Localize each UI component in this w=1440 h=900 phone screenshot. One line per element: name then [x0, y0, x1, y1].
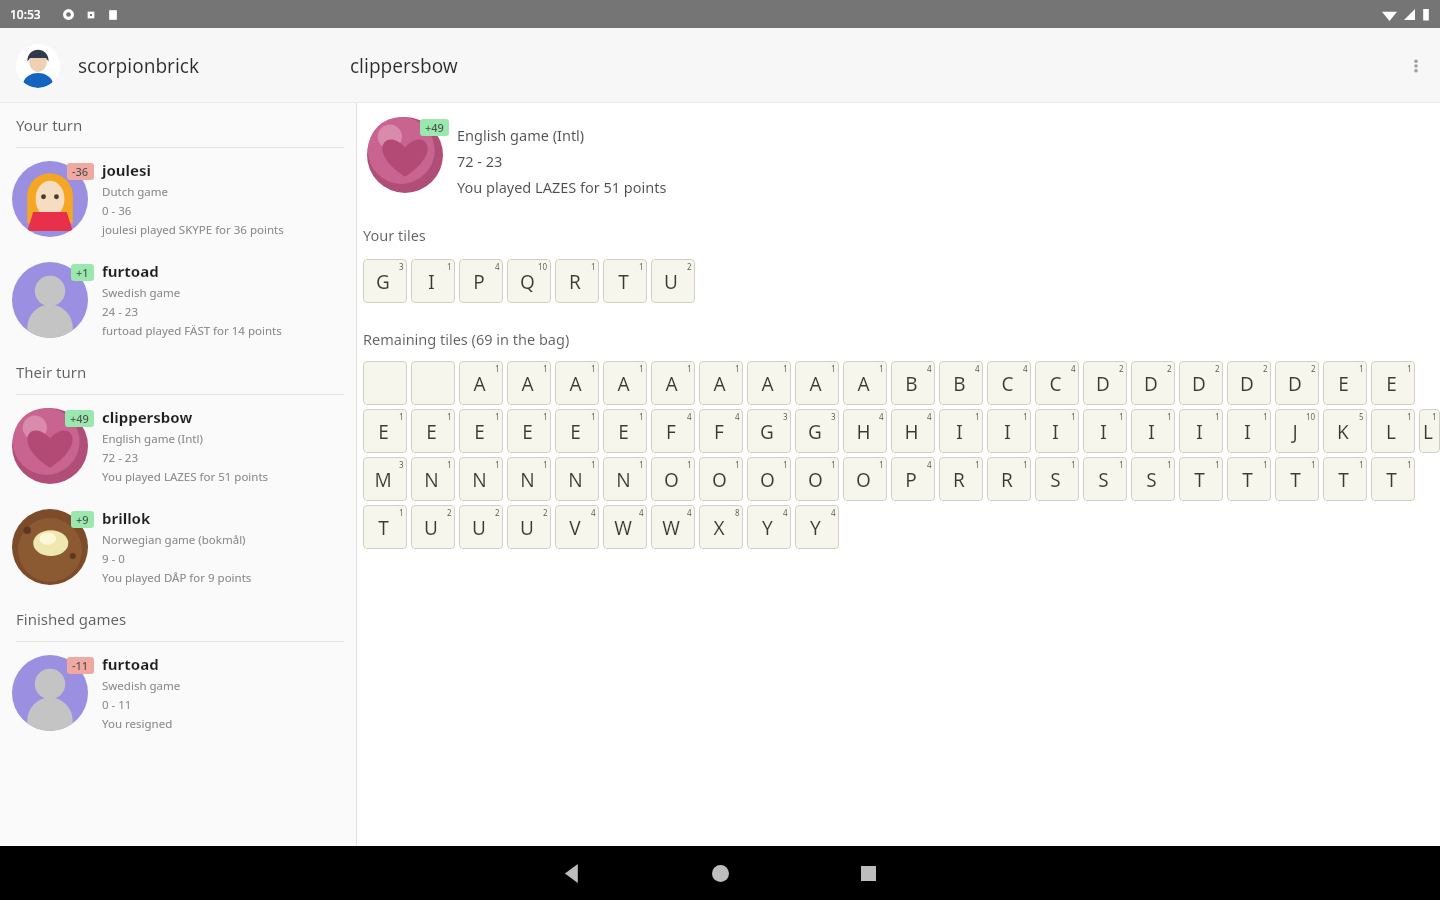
- button[interactable]: Y: [795, 505, 839, 549]
- button[interactable]: O: [699, 457, 743, 501]
- button[interactable]: I: [411, 259, 455, 303]
- button[interactable]: -11: [0, 642, 356, 743]
- button[interactable]: Q: [507, 259, 551, 303]
- button[interactable]: E: [555, 409, 599, 453]
- button[interactable]: [363, 361, 407, 405]
- button[interactable]: T: [363, 505, 407, 549]
- button[interactable]: O: [795, 457, 839, 501]
- button[interactable]: T: [1371, 457, 1415, 501]
- button[interactable]: -36: [0, 148, 356, 249]
- button[interactable]: R: [987, 457, 1031, 501]
- button[interactable]: T: [1275, 457, 1319, 501]
- button[interactable]: A: [843, 361, 887, 405]
- button[interactable]: N: [459, 457, 503, 501]
- button[interactable]: E: [459, 409, 503, 453]
- button[interactable]: [411, 361, 455, 405]
- button[interactable]: G: [363, 259, 407, 303]
- button[interactable]: O: [747, 457, 791, 501]
- button[interactable]: More options: [1392, 42, 1440, 90]
- button[interactable]: I: [987, 409, 1031, 453]
- button[interactable]: A: [699, 361, 743, 405]
- button[interactable]: Back: [524, 846, 620, 900]
- button[interactable]: W: [603, 505, 647, 549]
- button[interactable]: P: [891, 457, 935, 501]
- button[interactable]: D: [1227, 361, 1271, 405]
- button[interactable]: K: [1323, 409, 1367, 453]
- button[interactable]: W: [651, 505, 695, 549]
- button[interactable]: U: [459, 505, 503, 549]
- button[interactable]: U: [507, 505, 551, 549]
- button[interactable]: L: [1419, 409, 1440, 453]
- button[interactable]: A: [795, 361, 839, 405]
- button[interactable]: N: [507, 457, 551, 501]
- button[interactable]: +49: [0, 395, 356, 496]
- button[interactable]: B: [891, 361, 935, 405]
- button[interactable]: Recent apps: [820, 846, 916, 900]
- button[interactable]: T: [1227, 457, 1271, 501]
- staticText: +9: [76, 512, 89, 527]
- button[interactable]: D: [1275, 361, 1319, 405]
- button[interactable]: Y: [747, 505, 791, 549]
- staticText: 1: [1311, 459, 1316, 470]
- button[interactable]: D: [1131, 361, 1175, 405]
- staticText: S: [1146, 467, 1157, 493]
- button[interactable]: O: [651, 457, 695, 501]
- button[interactable]: H: [891, 409, 935, 453]
- staticText: G: [760, 419, 774, 445]
- button[interactable]: S: [1083, 457, 1127, 501]
- button[interactable]: I: [939, 409, 983, 453]
- button[interactable]: G: [795, 409, 839, 453]
- button[interactable]: X: [699, 505, 743, 549]
- button[interactable]: S: [1035, 457, 1079, 501]
- button[interactable]: U: [651, 259, 695, 303]
- button[interactable]: A: [555, 361, 599, 405]
- button[interactable]: F: [651, 409, 695, 453]
- button[interactable]: R: [555, 259, 599, 303]
- button[interactable]: I: [1083, 409, 1127, 453]
- button[interactable]: E: [363, 409, 407, 453]
- button[interactable]: A: [651, 361, 695, 405]
- button[interactable]: E: [1323, 361, 1367, 405]
- button[interactable]: S: [1131, 457, 1175, 501]
- button[interactable]: T: [603, 259, 647, 303]
- button[interactable]: O: [843, 457, 887, 501]
- button[interactable]: N: [411, 457, 455, 501]
- button[interactable]: E: [603, 409, 647, 453]
- button[interactable]: J: [1275, 409, 1319, 453]
- button[interactable]: H: [843, 409, 887, 453]
- button[interactable]: E: [411, 409, 455, 453]
- button[interactable]: N: [555, 457, 599, 501]
- button[interactable]: L: [1371, 409, 1415, 453]
- button[interactable]: R: [939, 457, 983, 501]
- button[interactable]: B: [939, 361, 983, 405]
- button[interactable]: I: [1035, 409, 1079, 453]
- button[interactable]: [16, 44, 60, 88]
- button[interactable]: +9: [0, 496, 356, 597]
- button[interactable]: C: [987, 361, 1031, 405]
- button[interactable]: Home: [672, 846, 768, 900]
- button[interactable]: A: [603, 361, 647, 405]
- button[interactable]: F: [699, 409, 743, 453]
- button[interactable]: I: [1131, 409, 1175, 453]
- button[interactable]: V: [555, 505, 599, 549]
- button[interactable]: +1: [0, 249, 356, 350]
- button[interactable]: D: [1179, 361, 1223, 405]
- button[interactable]: E: [1371, 361, 1415, 405]
- button[interactable]: P: [459, 259, 503, 303]
- button[interactable]: U: [411, 505, 455, 549]
- button[interactable]: E: [507, 409, 551, 453]
- button[interactable]: C: [1035, 361, 1079, 405]
- button[interactable]: N: [603, 457, 647, 501]
- button[interactable]: +49: [357, 117, 1440, 197]
- button[interactable]: D: [1083, 361, 1127, 405]
- button[interactable]: A: [747, 361, 791, 405]
- button[interactable]: A: [507, 361, 551, 405]
- button[interactable]: G: [747, 409, 791, 453]
- button[interactable]: I: [1227, 409, 1271, 453]
- button[interactable]: T: [1323, 457, 1367, 501]
- button[interactable]: A: [459, 361, 503, 405]
- button[interactable]: M: [363, 457, 407, 501]
- button[interactable]: T: [1179, 457, 1223, 501]
- staticText: Q: [520, 269, 535, 295]
- button[interactable]: I: [1179, 409, 1223, 453]
